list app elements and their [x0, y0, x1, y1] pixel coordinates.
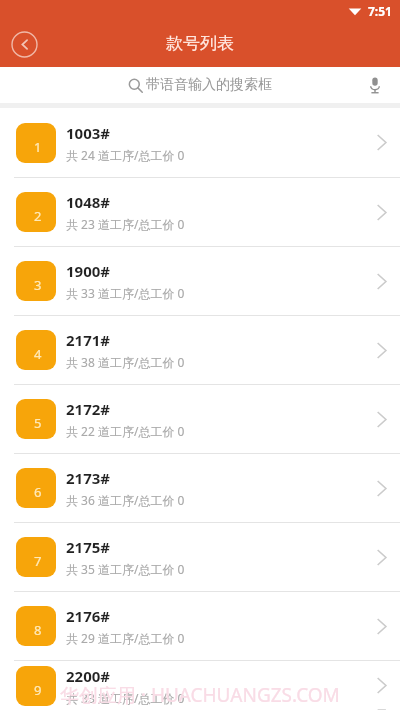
button[interactable]: Voice search	[362, 72, 388, 98]
staticText: 款号列表	[166, 33, 234, 54]
button[interactable]: 7	[0, 523, 400, 591]
staticText: 1003#	[66, 123, 111, 143]
staticText: 共 36 道工序/总工价 0	[66, 492, 185, 508]
staticText: 共 24 道工序/总工价 0	[66, 147, 185, 163]
button[interactable]: 3	[0, 247, 400, 315]
staticText: 带语音输入的搜索框	[146, 76, 272, 94]
staticText: 2	[34, 207, 42, 225]
button[interactable]: 6	[0, 454, 400, 522]
button[interactable]: 4	[0, 316, 400, 384]
staticText: 2176#	[66, 606, 111, 626]
button[interactable]: 1	[0, 108, 400, 177]
staticText: 共 38 道工序/总工价 0	[66, 354, 185, 370]
staticText: 共 35 道工序/总工价 0	[66, 561, 185, 577]
staticText: 9	[34, 681, 42, 699]
staticText: 共 22 道工序/总工价 0	[66, 423, 185, 439]
staticText: 2172#	[66, 399, 111, 419]
button[interactable]: 5	[0, 385, 400, 453]
staticText: 共 23 道工序/总工价 0	[66, 216, 185, 232]
staticText: 共 29 道工序/总工价 0	[66, 630, 185, 646]
staticText: 3	[34, 276, 42, 294]
staticText: 5	[34, 414, 42, 432]
staticText: 4	[34, 345, 42, 363]
staticText: 2171#	[66, 330, 111, 350]
staticText: 1900#	[66, 261, 111, 281]
button[interactable]: 9	[0, 661, 400, 710]
staticText: 1048#	[66, 192, 111, 212]
staticText: 7:51	[368, 3, 392, 19]
staticText: 2200#	[66, 666, 111, 686]
staticText: 6	[34, 483, 42, 501]
staticText: 7	[34, 552, 42, 570]
staticText: 8	[34, 621, 42, 639]
button[interactable]: Back	[9, 29, 39, 59]
staticText: 2175#	[66, 537, 111, 557]
staticText: 共 33 道工序/总工价 0	[66, 690, 185, 706]
staticText: 华创应用 · HUACHUANGZS.COM	[60, 682, 340, 708]
staticText: 2173#	[66, 468, 111, 488]
staticText: 1	[34, 138, 42, 156]
button[interactable]: 8	[0, 592, 400, 660]
button[interactable]: 2	[0, 178, 400, 246]
button[interactable]: 带语音输入的搜索框	[0, 67, 400, 103]
staticText: 共 33 道工序/总工价 0	[66, 285, 185, 301]
